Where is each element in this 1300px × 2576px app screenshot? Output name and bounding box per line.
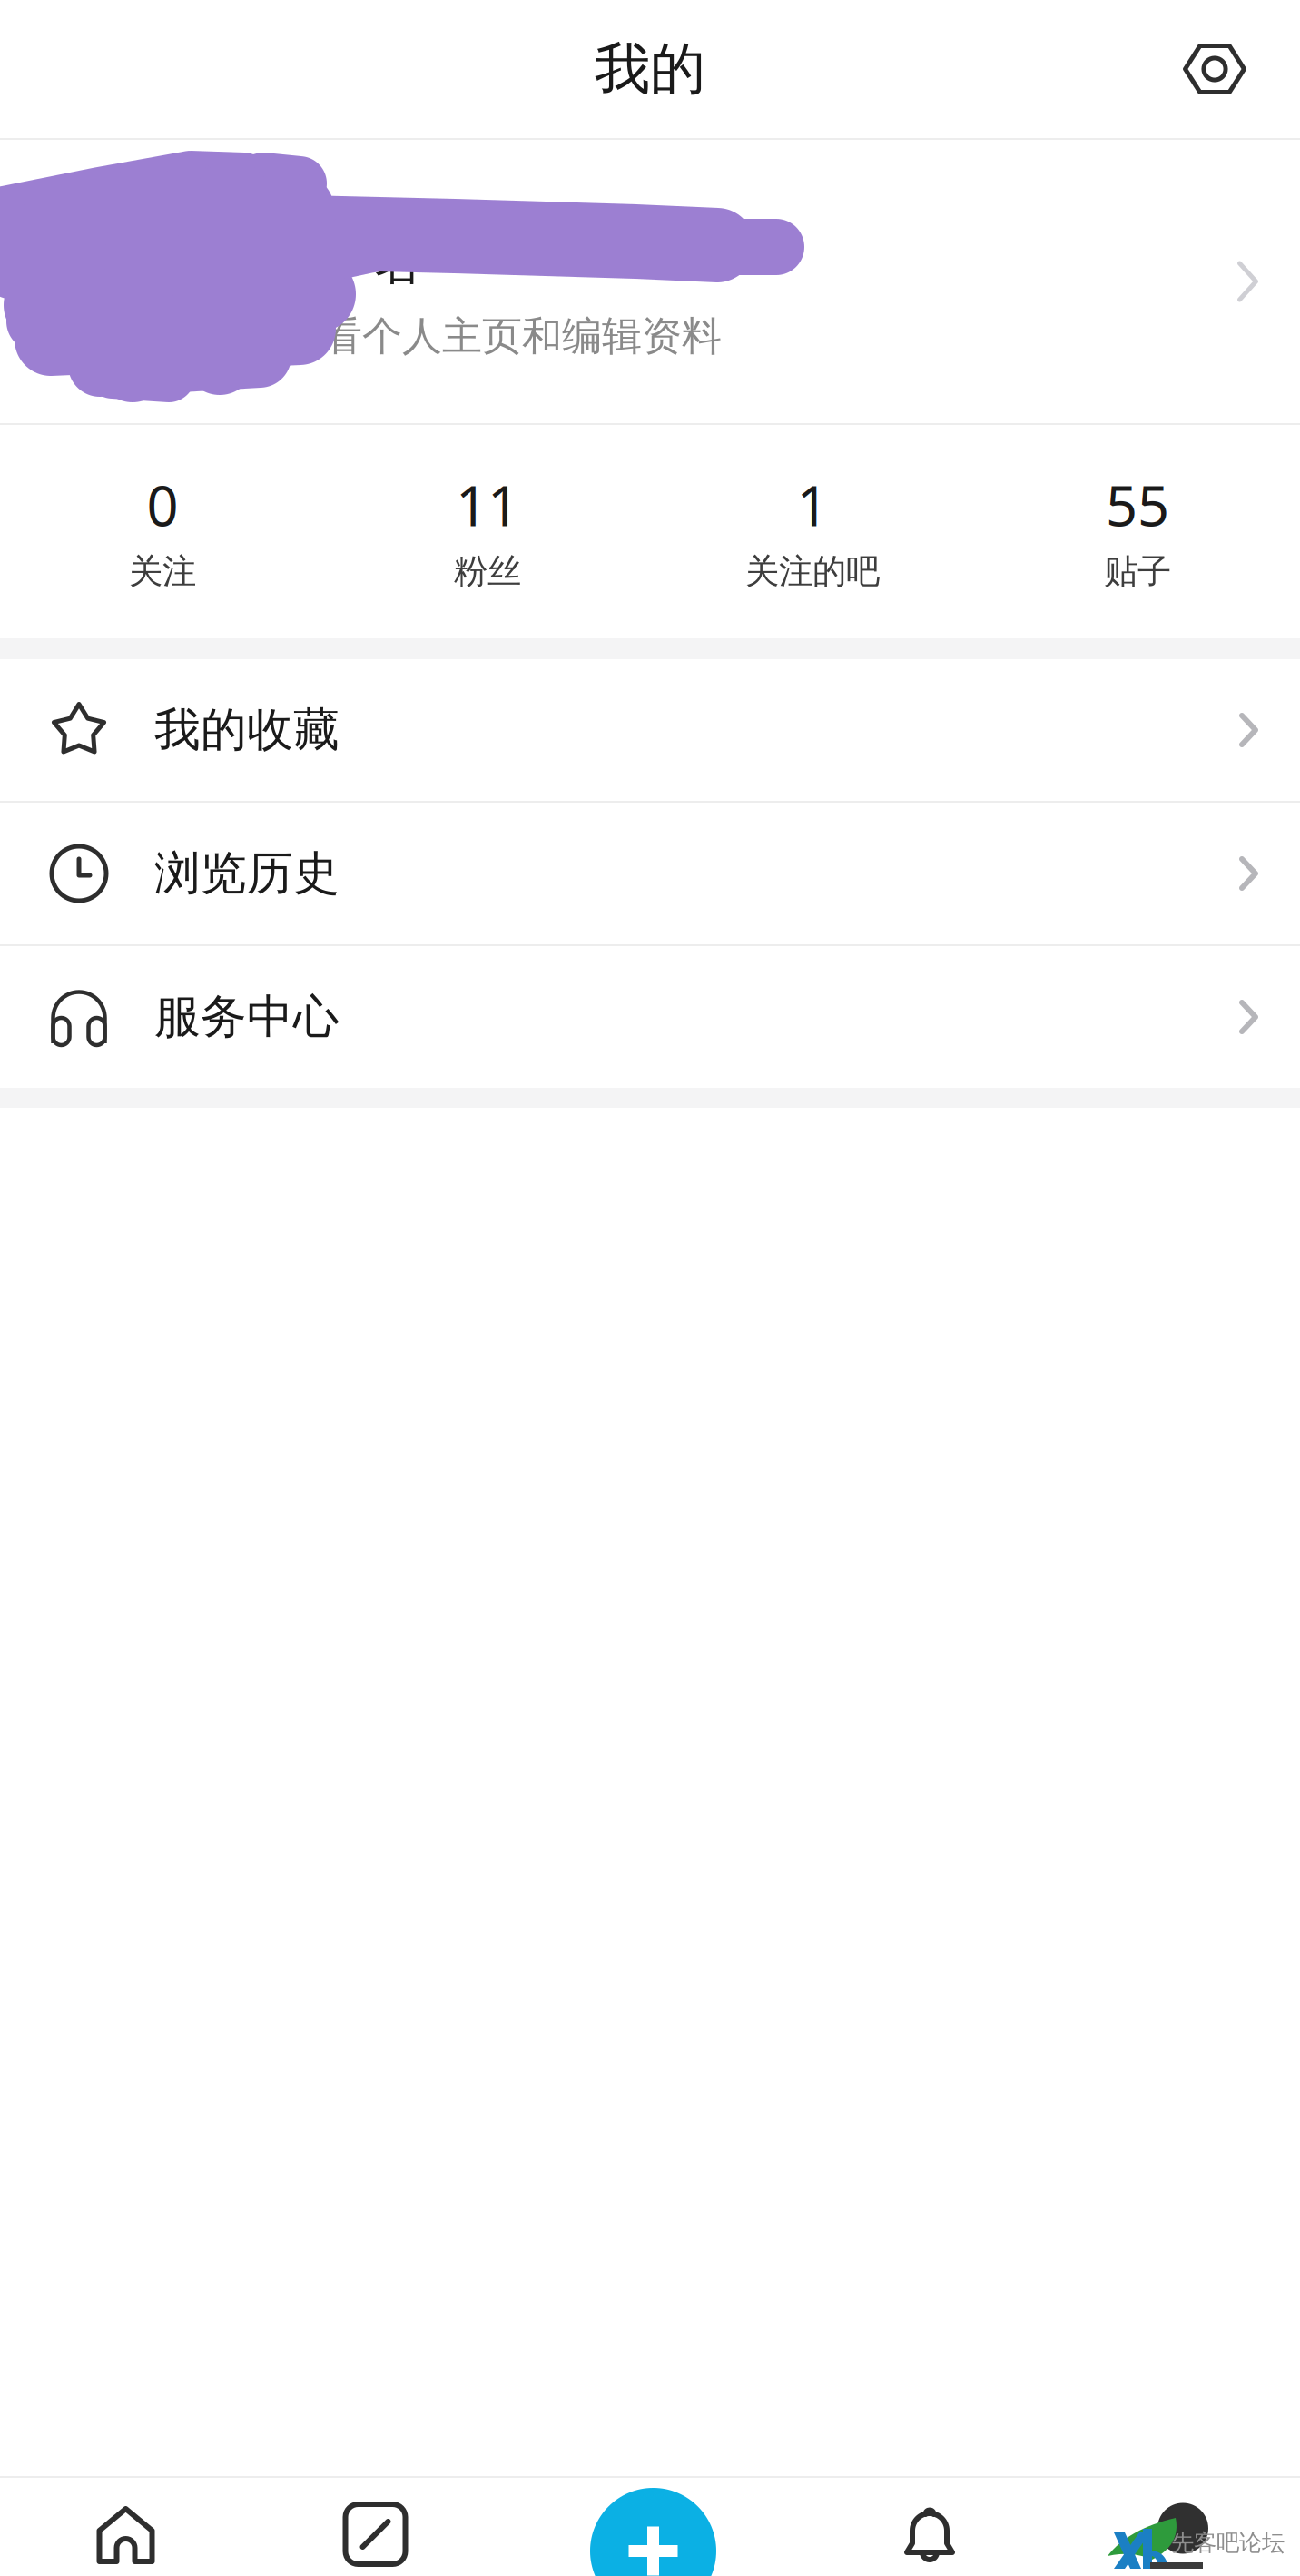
button[interactable]: 我的收藏 <box>0 659 1300 801</box>
staticText: 我的 <box>595 35 705 103</box>
staticText: 浏览历史 <box>154 845 340 902</box>
button[interactable]: 服务中心 <box>0 946 1300 1088</box>
button[interactable]: 我的 <box>1053 2478 1300 2576</box>
staticText: 11 <box>456 468 519 542</box>
staticText: 先客吧论坛 <box>1171 2529 1285 2557</box>
staticText: 55 <box>1106 468 1169 542</box>
staticText: 贴子 <box>1104 551 1171 592</box>
button[interactable]: 0 <box>0 425 325 638</box>
staticText: 1 <box>797 468 828 542</box>
staticText: 查看个人主页和编辑资料 <box>282 312 722 361</box>
staticText: 0 <box>147 468 178 542</box>
button[interactable]: 设置 <box>1158 0 1271 138</box>
button[interactable]: 用户名 <box>0 140 1300 423</box>
button[interactable]: 首页 <box>0 2478 251 2576</box>
button[interactable]: 浏览历史 <box>0 803 1300 944</box>
staticText: 用户名 <box>282 235 421 292</box>
staticText: 关注的吧 <box>745 551 880 592</box>
button[interactable]: 11 <box>325 425 650 638</box>
button[interactable]: 1 <box>650 425 975 638</box>
button[interactable]: 消息 <box>806 2478 1053 2576</box>
staticText: 粉丝 <box>454 551 521 592</box>
staticText: 关注 <box>129 551 196 592</box>
button[interactable]: 发布 <box>499 2478 806 2576</box>
button[interactable]: 动态 <box>251 2478 499 2576</box>
button[interactable]: 55 <box>975 425 1300 638</box>
staticText: 我的收藏 <box>154 702 340 758</box>
staticText: 服务中心 <box>154 989 340 1045</box>
